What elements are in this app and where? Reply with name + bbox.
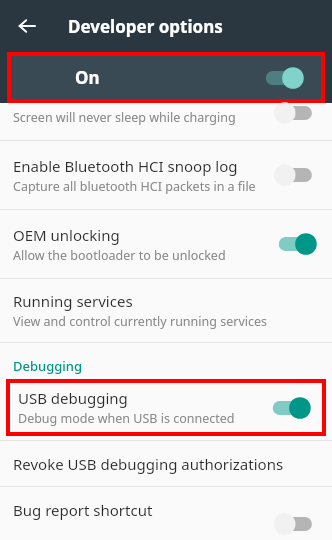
staticText: Capture all bluetooth HCI packets in a f…: [13, 178, 256, 195]
staticText: Debugging: [13, 357, 83, 375]
button[interactable]: Enable Bluetooth HCI snoop log: [0, 141, 332, 209]
button[interactable]: On: [11, 56, 321, 99]
staticText: On: [75, 66, 263, 89]
button[interactable]: Bug report shortcut: [0, 487, 332, 532]
staticText: View and control currently running servi…: [13, 313, 268, 330]
staticText: Debug mode when USB is connected: [18, 410, 235, 427]
button[interactable]: Revoke USB debugging authorizations: [0, 441, 332, 486]
button[interactable]: Screen will never sleep while charging: [0, 103, 332, 140]
staticText: OEM unlocking: [13, 225, 120, 245]
staticText: USB debugging: [18, 388, 128, 408]
button[interactable]: OEM unlocking: [0, 210, 332, 278]
button[interactable]: Back: [7, 6, 47, 46]
staticText: Revoke USB debugging authorizations: [13, 454, 284, 474]
button[interactable]: Running services: [0, 279, 332, 342]
staticText: Developer options: [68, 15, 223, 38]
button[interactable]: USB debugging: [10, 383, 322, 432]
staticText: Bug report shortcut: [13, 500, 276, 520]
staticText: Screen will never sleep while charging: [13, 109, 276, 126]
staticText: Enable Bluetooth HCI snoop log: [13, 156, 238, 176]
staticText: Allow the bootloader to be unlocked: [13, 247, 226, 264]
staticText: Running services: [13, 291, 133, 311]
